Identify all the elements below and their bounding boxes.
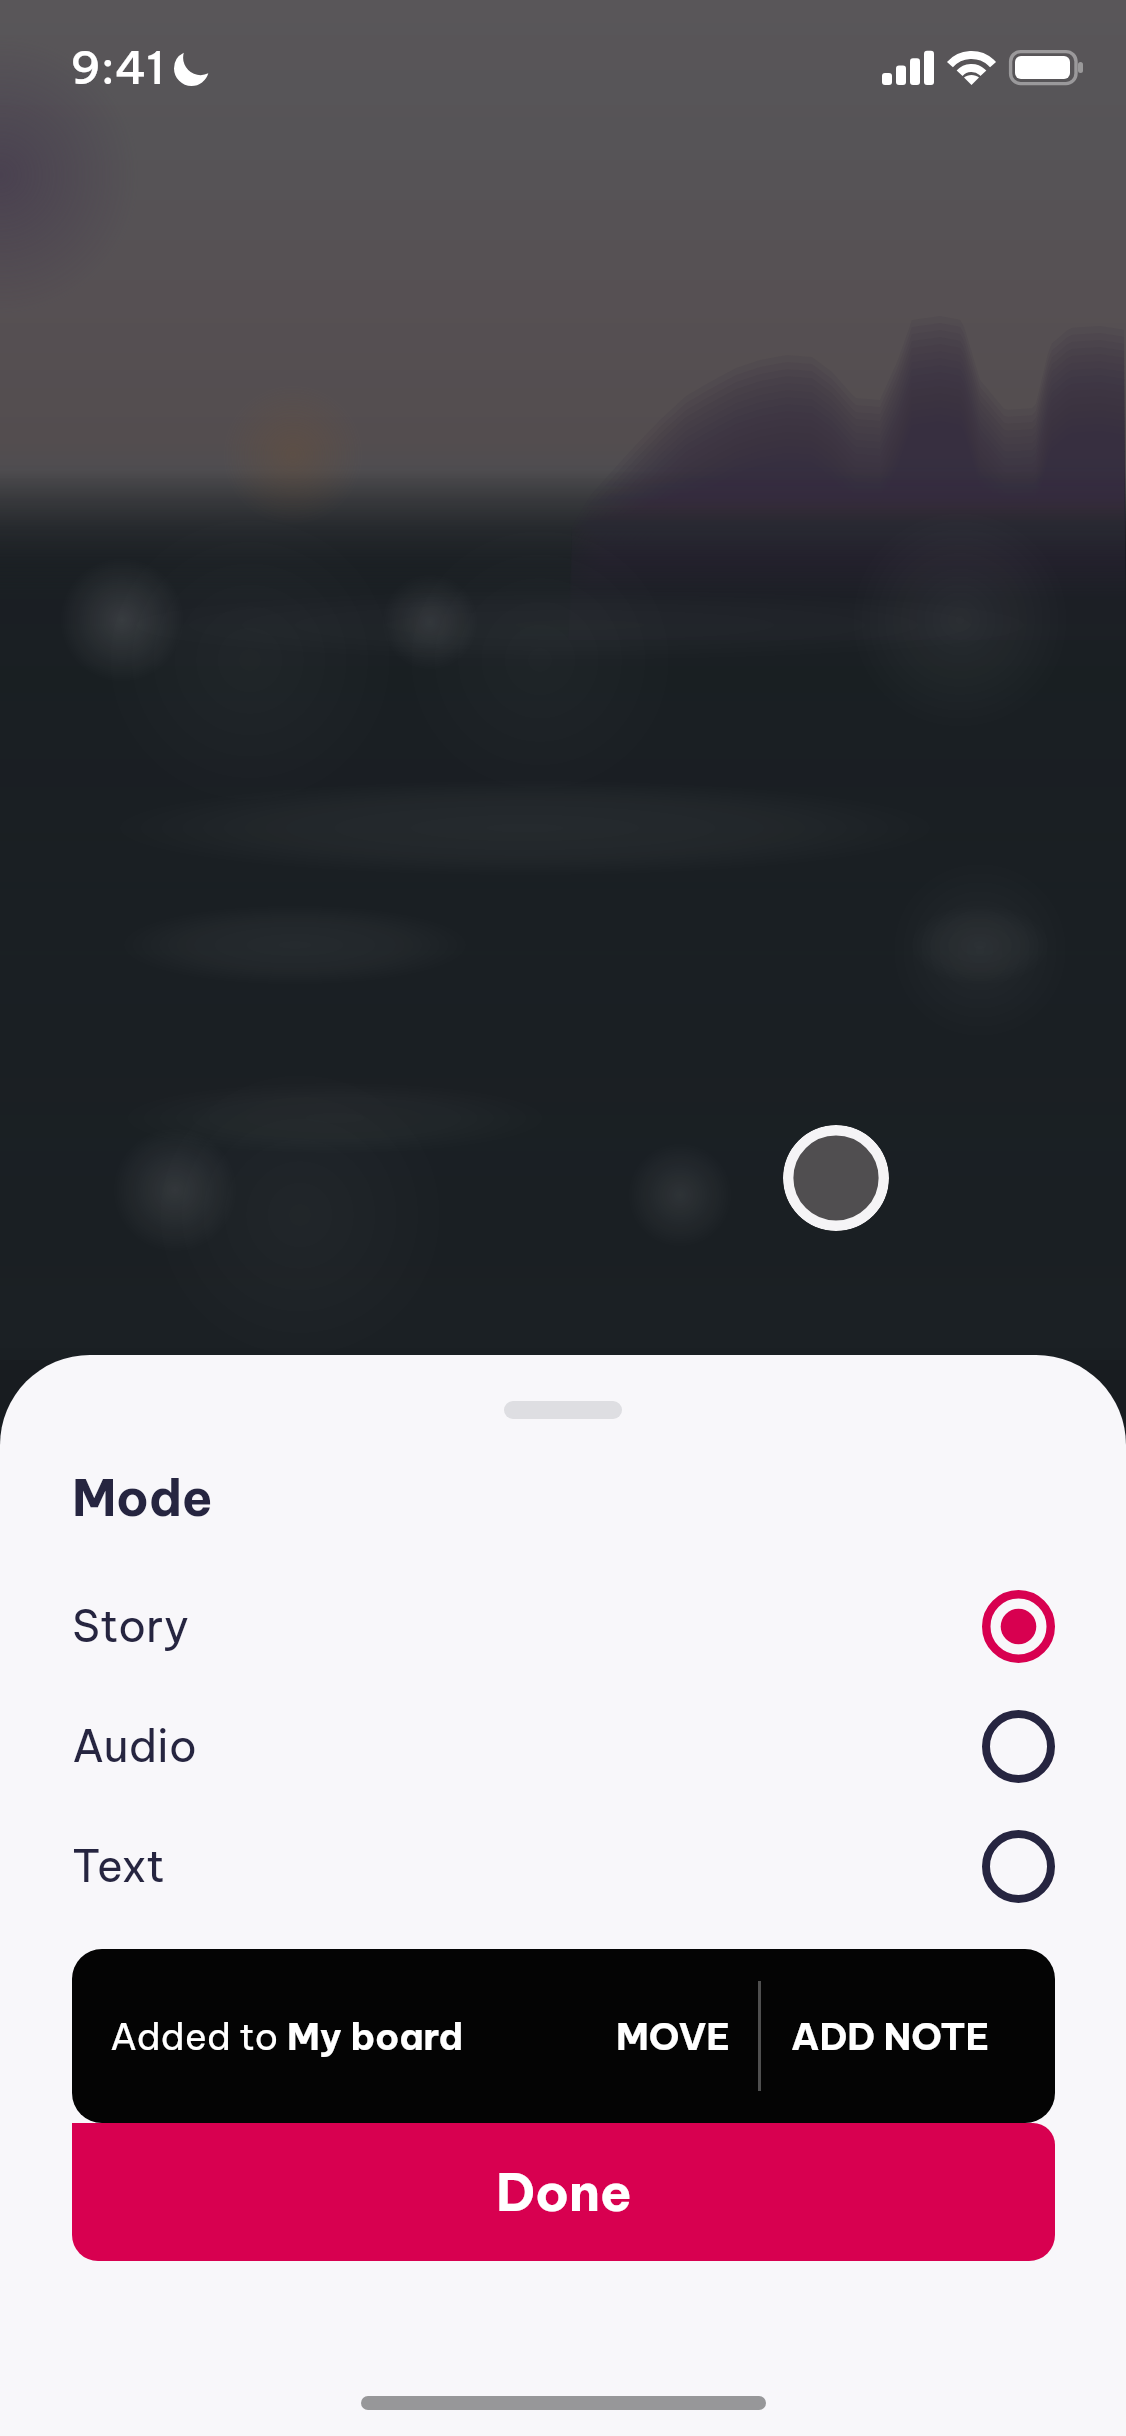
button[interactable]: Done <box>72 2123 1055 2261</box>
button[interactable]: Record <box>783 1125 889 1231</box>
staticText: MOVE <box>616 2013 731 2060</box>
button[interactable]: Story <box>0 1566 1126 1686</box>
button[interactable]: ADD NOTE <box>766 1949 1014 2123</box>
button[interactable]: Text <box>0 1806 1126 1926</box>
button[interactable]: Audio <box>0 1686 1126 1806</box>
staticText: My board <box>287 2013 464 2060</box>
staticText: Done <box>496 2159 632 2225</box>
staticText: Audio <box>72 1718 197 1774</box>
staticText: Mode <box>72 1466 213 1529</box>
staticText: 9:41 <box>70 39 165 96</box>
button[interactable]: MOVE <box>588 1949 758 2123</box>
staticText: Added to <box>110 2013 287 2060</box>
staticText: Text <box>72 1838 166 1894</box>
staticText: Story <box>72 1598 190 1654</box>
staticText: ADD NOTE <box>791 2013 990 2060</box>
